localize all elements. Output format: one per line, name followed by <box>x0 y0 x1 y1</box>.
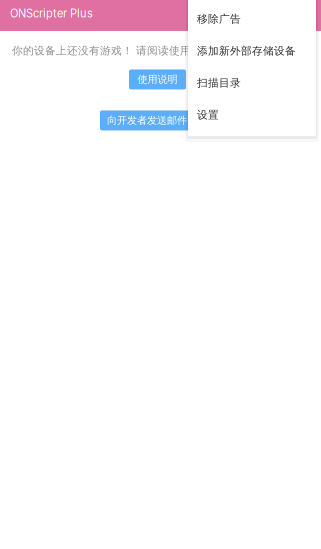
button[interactable]: 添加新外部存储设备 <box>188 35 316 67</box>
button[interactable]: 移除广告 <box>188 3 316 35</box>
staticText: 设置 <box>197 108 219 122</box>
staticText: 扫描目录 <box>197 76 241 90</box>
button[interactable]: 向开发者发送邮件 <box>100 110 194 130</box>
button[interactable]: 设置 <box>188 99 316 131</box>
staticText: 添加新外部存储设备 <box>197 44 296 58</box>
staticText: 向开发者发送邮件 <box>107 114 187 127</box>
button[interactable]: 使用说明 <box>129 69 186 89</box>
staticText: 你的设备上还没有游戏！ 请阅读使用说明。 <box>12 44 224 57</box>
staticText: ONScripter Plus <box>10 7 93 20</box>
staticText: 使用说明 <box>137 73 177 86</box>
button[interactable]: 扫描目录 <box>188 67 316 99</box>
staticText: 移除广告 <box>197 12 241 26</box>
